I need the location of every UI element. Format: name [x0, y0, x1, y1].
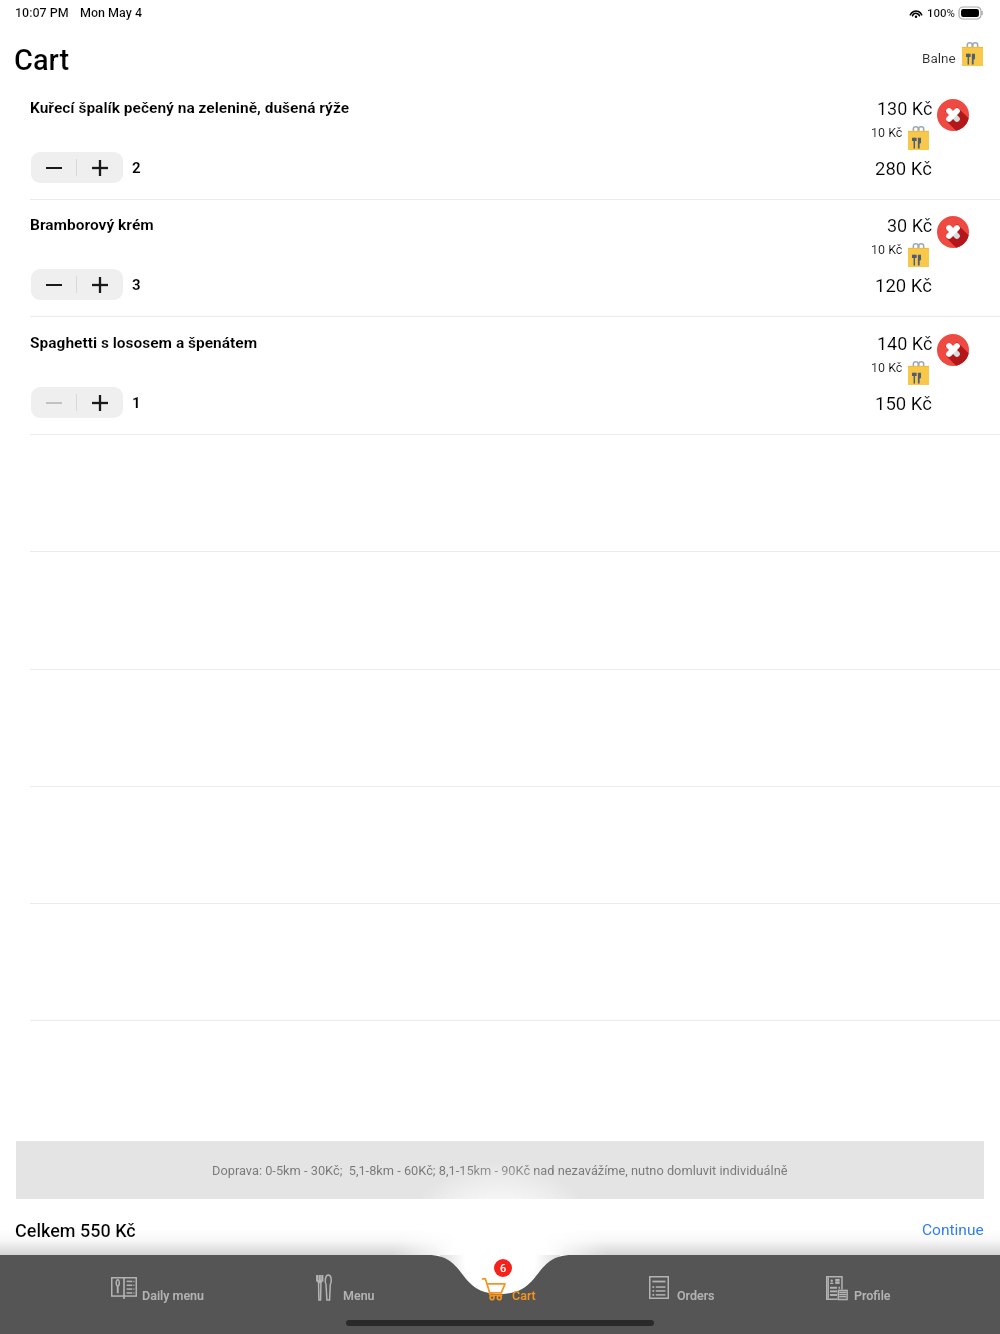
staticText: Mon May 4 — [80, 5, 142, 20]
staticText: Profile — [854, 1288, 891, 1303]
staticText: Menu — [343, 1288, 375, 1303]
staticText: 10 Kč — [871, 360, 903, 375]
staticText: 6 — [500, 1262, 507, 1275]
button[interactable]: Increase quantity — [77, 387, 123, 418]
staticText: 3 — [132, 276, 141, 294]
button[interactable]: Menu — [308, 1269, 413, 1306]
staticText: Bramborový krém — [30, 216, 154, 234]
staticText: 130 Kč — [877, 98, 933, 119]
staticText: 100% — [927, 6, 956, 19]
staticText: 10 Kč — [871, 125, 903, 140]
staticText: 140 Kč — [877, 333, 933, 354]
staticText: 10:07 PM — [15, 5, 69, 20]
button[interactable]: Remove item — [937, 216, 969, 248]
button[interactable]: Decrease quantity — [31, 269, 76, 300]
staticText: Daily menu — [142, 1288, 204, 1303]
staticText: 280 Kč — [875, 158, 932, 180]
button[interactable]: Decrease quantity — [31, 152, 76, 183]
staticText: Spaghetti s lososem a špenátem — [30, 334, 258, 352]
button[interactable]: Balne — [910, 38, 988, 70]
button[interactable]: Decrease quantity — [31, 387, 76, 418]
button[interactable]: Increase quantity — [77, 152, 123, 183]
staticText: Cart — [512, 1288, 536, 1303]
button[interactable]: Remove item — [937, 99, 969, 131]
staticText: Kuřecí špalík pečený na zelenině, dušená… — [30, 99, 350, 117]
staticText: 2 — [132, 159, 141, 177]
staticText: Doprava: 0-5km - 30Kč; 5,1-8km - 60Kč; 8… — [212, 1163, 788, 1178]
staticText: Balne — [922, 50, 956, 66]
staticText: 1 — [132, 394, 141, 412]
staticText: Celkem 550 Kč — [15, 1220, 136, 1241]
staticText: Continue — [922, 1221, 984, 1239]
staticText: Cart — [14, 43, 70, 77]
button[interactable]: Daily menu — [103, 1271, 212, 1305]
button[interactable]: Profile — [818, 1270, 924, 1306]
button[interactable]: Continue — [906, 1215, 1000, 1245]
staticText: 150 Kč — [875, 393, 932, 415]
button[interactable]: Remove item — [937, 334, 969, 366]
staticText: 10 Kč — [871, 242, 903, 257]
staticText: Orders — [677, 1288, 715, 1303]
button[interactable]: Orders — [641, 1270, 747, 1305]
staticText: 120 Kč — [875, 275, 932, 297]
button[interactable]: 6 — [474, 1253, 544, 1309]
button[interactable]: Increase quantity — [77, 269, 123, 300]
staticText: 30 Kč — [887, 215, 933, 236]
